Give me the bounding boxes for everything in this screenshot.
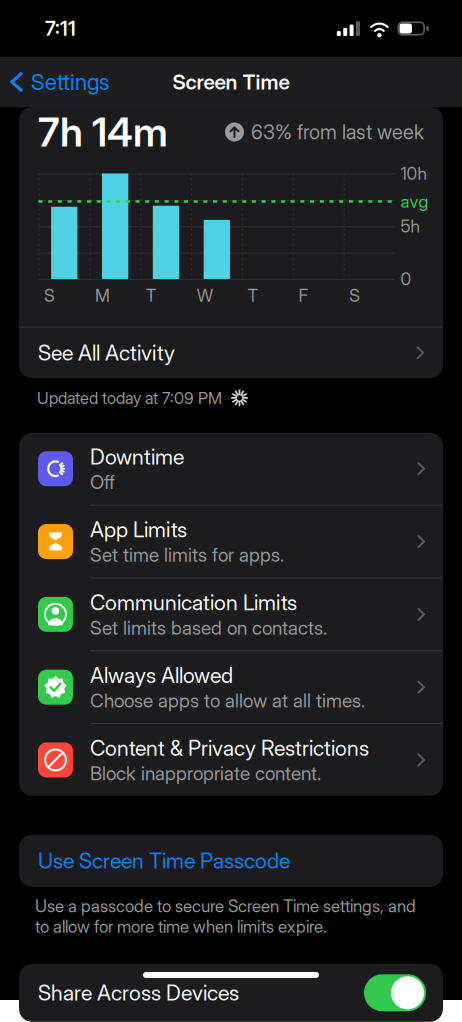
staticText: Off — [90, 471, 115, 494]
staticText: 63% from last week — [251, 120, 424, 144]
button[interactable]: App Limits — [19, 506, 443, 578]
staticText: S — [44, 285, 55, 306]
staticText: S — [349, 285, 360, 306]
staticText: 5h — [400, 216, 419, 237]
staticText: See All Activity — [38, 340, 175, 366]
staticText: Set time limits for apps. — [90, 543, 284, 566]
staticText: Settings — [31, 69, 109, 95]
button[interactable]: Settings — [0, 58, 117, 106]
staticText: T — [247, 285, 258, 306]
staticText: Set limits based on contacts. — [90, 616, 327, 639]
staticText: Always Allowed — [90, 662, 233, 688]
staticText: to allow for more time when limits expir… — [35, 916, 327, 937]
staticText: F — [298, 285, 308, 306]
staticText: Use Screen Time Passcode — [38, 848, 290, 874]
staticText: Downtime — [90, 444, 184, 470]
staticText: 0 — [400, 268, 411, 289]
staticText: Share Across Devices — [38, 980, 239, 1006]
button[interactable]: Always Allowed — [19, 651, 443, 724]
staticText: Screen Time — [172, 69, 289, 94]
staticText: Choose apps to allow at all times. — [90, 689, 365, 712]
staticText: 7h 14m — [38, 108, 168, 156]
staticText: M — [95, 285, 110, 306]
staticText: Updated today at 7:09 PM — [37, 388, 222, 408]
staticText: avg — [400, 191, 428, 212]
staticText: App Limits — [90, 517, 187, 542]
staticText: T — [146, 285, 157, 306]
button[interactable]: Communication Limits — [19, 578, 443, 651]
button[interactable]: See All Activity — [19, 327, 443, 378]
staticText: Use a passcode to secure Screen Time set… — [35, 896, 416, 916]
staticText: Block inappropriate content. — [90, 762, 321, 785]
staticText: Communication Limits — [90, 589, 297, 615]
staticText: W — [197, 285, 213, 306]
staticText: 7:11 — [45, 16, 76, 41]
button[interactable]: Share Across Devices — [364, 974, 426, 1011]
staticText: Content & Privacy Restrictions — [90, 735, 369, 761]
button[interactable]: Content & Privacy Restrictions — [19, 724, 443, 796]
button[interactable]: Downtime — [19, 433, 443, 506]
button[interactable]: Use Screen Time Passcode — [0, 835, 462, 887]
staticText: 10h — [400, 163, 426, 184]
